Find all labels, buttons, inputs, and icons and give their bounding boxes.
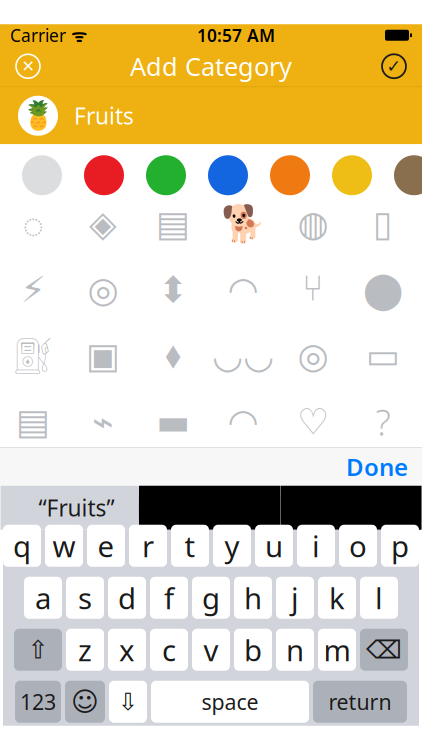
button[interactable]: Icon 24: [348, 389, 418, 455]
button[interactable]: Cancel: [6, 46, 50, 86]
button[interactable]: x: [108, 629, 146, 671]
button[interactable]: Icon 2: [68, 191, 138, 257]
button[interactable]: Icon 12: [348, 257, 418, 323]
staticText: g: [202, 578, 220, 617]
button[interactable]: Icon 21: [138, 389, 208, 455]
button[interactable]: 123: [15, 681, 61, 723]
button[interactable]: f: [150, 577, 188, 619]
button[interactable]: Colour 8: [383, 144, 422, 206]
staticText: ◠: [227, 269, 258, 310]
button[interactable]: Icon 18: [348, 323, 418, 389]
staticText: ⬍: [158, 269, 188, 310]
button[interactable]: l: [360, 577, 398, 619]
button[interactable]: d: [108, 577, 146, 619]
button[interactable]: Icon 8: [68, 257, 138, 323]
staticText: ⇧: [27, 635, 48, 664]
staticText: ◌: [22, 200, 43, 248]
button[interactable]: Icon 23: [278, 389, 348, 455]
button[interactable]: 🍍: [0, 87, 422, 144]
button[interactable]: Colour 5: [197, 144, 259, 206]
button[interactable]: Icon 9: [138, 257, 208, 323]
button[interactable]: Icon 15: [138, 323, 208, 389]
button[interactable]: Icon 5: [278, 191, 348, 257]
button[interactable]: space: [151, 681, 309, 723]
staticText: q: [13, 526, 31, 565]
button[interactable]: Suggestion 3: [280, 486, 421, 530]
button[interactable]: t: [171, 525, 209, 567]
button[interactable]: Save: [372, 46, 416, 86]
staticText: ⑂: [302, 272, 324, 307]
staticText: ▭: [366, 335, 400, 376]
button[interactable]: Icon 7: [0, 257, 68, 323]
button[interactable]: Icon 20: [68, 389, 138, 455]
button[interactable]: q: [3, 525, 41, 567]
button[interactable]: g: [192, 577, 230, 619]
staticText: Add Category: [130, 49, 292, 83]
button[interactable]: Emoji: [65, 681, 105, 723]
button[interactable]: Shift: [14, 629, 62, 671]
button[interactable]: Icon 1: [0, 191, 68, 257]
staticText: r: [142, 526, 154, 565]
button[interactable]: “Fruits”: [0, 486, 138, 530]
button[interactable]: m: [318, 629, 356, 671]
button[interactable]: Icon 22: [208, 389, 278, 455]
button[interactable]: k: [318, 577, 356, 619]
button[interactable]: c: [150, 629, 188, 671]
staticText: ⬧: [165, 338, 181, 373]
staticText: ▣: [86, 335, 120, 376]
staticText: 10:57 AM: [197, 24, 275, 47]
button[interactable]: Suggestion 2: [139, 486, 280, 530]
staticText: s: [78, 578, 92, 617]
button[interactable]: Colour 2: [11, 144, 73, 206]
button[interactable]: p: [381, 525, 419, 567]
button[interactable]: u: [255, 525, 293, 567]
staticText: h: [244, 578, 262, 617]
button[interactable]: r: [129, 525, 167, 567]
button[interactable]: Colour 4: [135, 144, 197, 206]
staticText: m: [323, 630, 350, 669]
staticText: ◎: [297, 335, 328, 376]
staticText: t: [184, 526, 195, 565]
button[interactable]: Dictation: [109, 681, 147, 723]
button[interactable]: Colour 6: [259, 144, 321, 206]
button[interactable]: Icon 13: [0, 323, 68, 389]
button[interactable]: Icon 4: [208, 191, 278, 257]
button[interactable]: j: [276, 577, 314, 619]
button[interactable]: y: [213, 525, 251, 567]
button[interactable]: return: [313, 681, 407, 723]
button[interactable]: b: [234, 629, 272, 671]
button[interactable]: Icon 3: [138, 191, 208, 257]
staticText: Fruits: [74, 101, 134, 131]
button[interactable]: Icon 19: [0, 389, 68, 455]
staticText: z: [78, 630, 92, 669]
button[interactable]: n: [276, 629, 314, 671]
button[interactable]: Icon 14: [68, 323, 138, 389]
button[interactable]: h: [234, 577, 272, 619]
button[interactable]: Icon 10: [208, 257, 278, 323]
button[interactable]: w: [45, 525, 83, 567]
button[interactable]: Colour 7: [321, 144, 383, 206]
button[interactable]: Icon 16: [208, 323, 278, 389]
button[interactable]: v: [192, 629, 230, 671]
button[interactable]: Icon 17: [278, 323, 348, 389]
staticText: c: [162, 630, 176, 669]
button[interactable]: e: [87, 525, 125, 567]
staticText: ☺: [71, 687, 99, 717]
staticText: 🐕: [220, 203, 265, 244]
button[interactable]: z: [66, 629, 104, 671]
button[interactable]: Done: [332, 443, 422, 491]
staticText: ▯: [373, 203, 393, 244]
staticText: ◈: [89, 203, 117, 244]
button[interactable]: a: [24, 577, 62, 619]
button[interactable]: Icon 11: [278, 257, 348, 323]
staticText: ✕: [21, 57, 34, 75]
staticText: y: [224, 526, 239, 565]
button[interactable]: s: [66, 577, 104, 619]
button[interactable]: i: [297, 525, 335, 567]
button[interactable]: Colour 3: [73, 144, 135, 206]
button[interactable]: Icon 6: [348, 191, 418, 257]
button[interactable]: Delete: [360, 629, 408, 671]
staticText: b: [244, 630, 262, 669]
button[interactable]: o: [339, 525, 377, 567]
